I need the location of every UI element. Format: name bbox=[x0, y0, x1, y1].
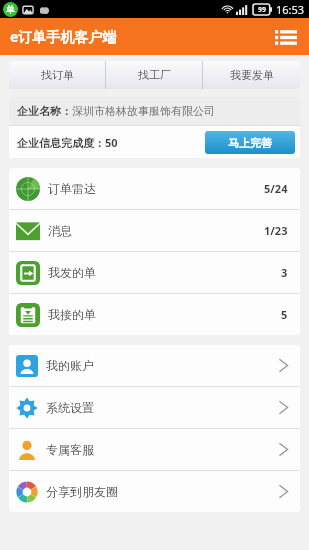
staticText: 找工厂 bbox=[138, 68, 171, 82]
button[interactable]: 系统设置 bbox=[9, 387, 300, 428]
staticText: e订单手机客户端 bbox=[10, 27, 117, 46]
staticText: 系统设置 bbox=[46, 400, 94, 415]
button[interactable]: 分享到朋友圈 bbox=[9, 471, 300, 512]
staticText: 深圳市格林故事服饰有限公司 bbox=[72, 104, 215, 118]
staticText: 3 bbox=[281, 265, 288, 280]
button[interactable]: 我的账户 bbox=[9, 345, 300, 386]
staticText: 订单雷达 bbox=[48, 181, 96, 196]
staticText: 企业信息完成度：50 bbox=[17, 135, 118, 150]
staticText: 消息 bbox=[48, 223, 72, 238]
button[interactable]: 我发的单 bbox=[9, 252, 300, 293]
staticText: 企业名称： bbox=[17, 104, 72, 118]
button[interactable]: 找订单 bbox=[9, 61, 106, 89]
button[interactable]: 消息 bbox=[9, 210, 300, 251]
staticText: 我发的单 bbox=[48, 265, 96, 280]
button[interactable]: 我要发单 bbox=[203, 61, 300, 89]
staticText: 马上完善 bbox=[228, 136, 272, 150]
staticText: 5 bbox=[281, 307, 288, 322]
staticText: 我的账户 bbox=[46, 358, 94, 373]
button[interactable]: 找工厂 bbox=[106, 61, 203, 89]
staticText: 16:53 bbox=[276, 2, 305, 17]
staticText: 我接的单 bbox=[48, 307, 96, 322]
button[interactable]: 我接的单 bbox=[9, 294, 300, 335]
staticText: 专属客服 bbox=[46, 442, 94, 457]
staticText: 5/24 bbox=[264, 181, 288, 196]
button[interactable]: Menu bbox=[271, 22, 301, 52]
button[interactable]: 马上完善 bbox=[205, 131, 295, 154]
button[interactable]: 订单雷达 bbox=[9, 168, 300, 209]
staticText: 找订单 bbox=[41, 68, 74, 82]
staticText: 我要发单 bbox=[230, 68, 274, 82]
staticText: 99 bbox=[258, 5, 267, 15]
staticText: 1/23 bbox=[264, 223, 288, 238]
staticText: 分享到朋友圈 bbox=[46, 484, 118, 499]
button[interactable]: 专属客服 bbox=[9, 429, 300, 470]
staticText: 单 bbox=[6, 4, 15, 15]
